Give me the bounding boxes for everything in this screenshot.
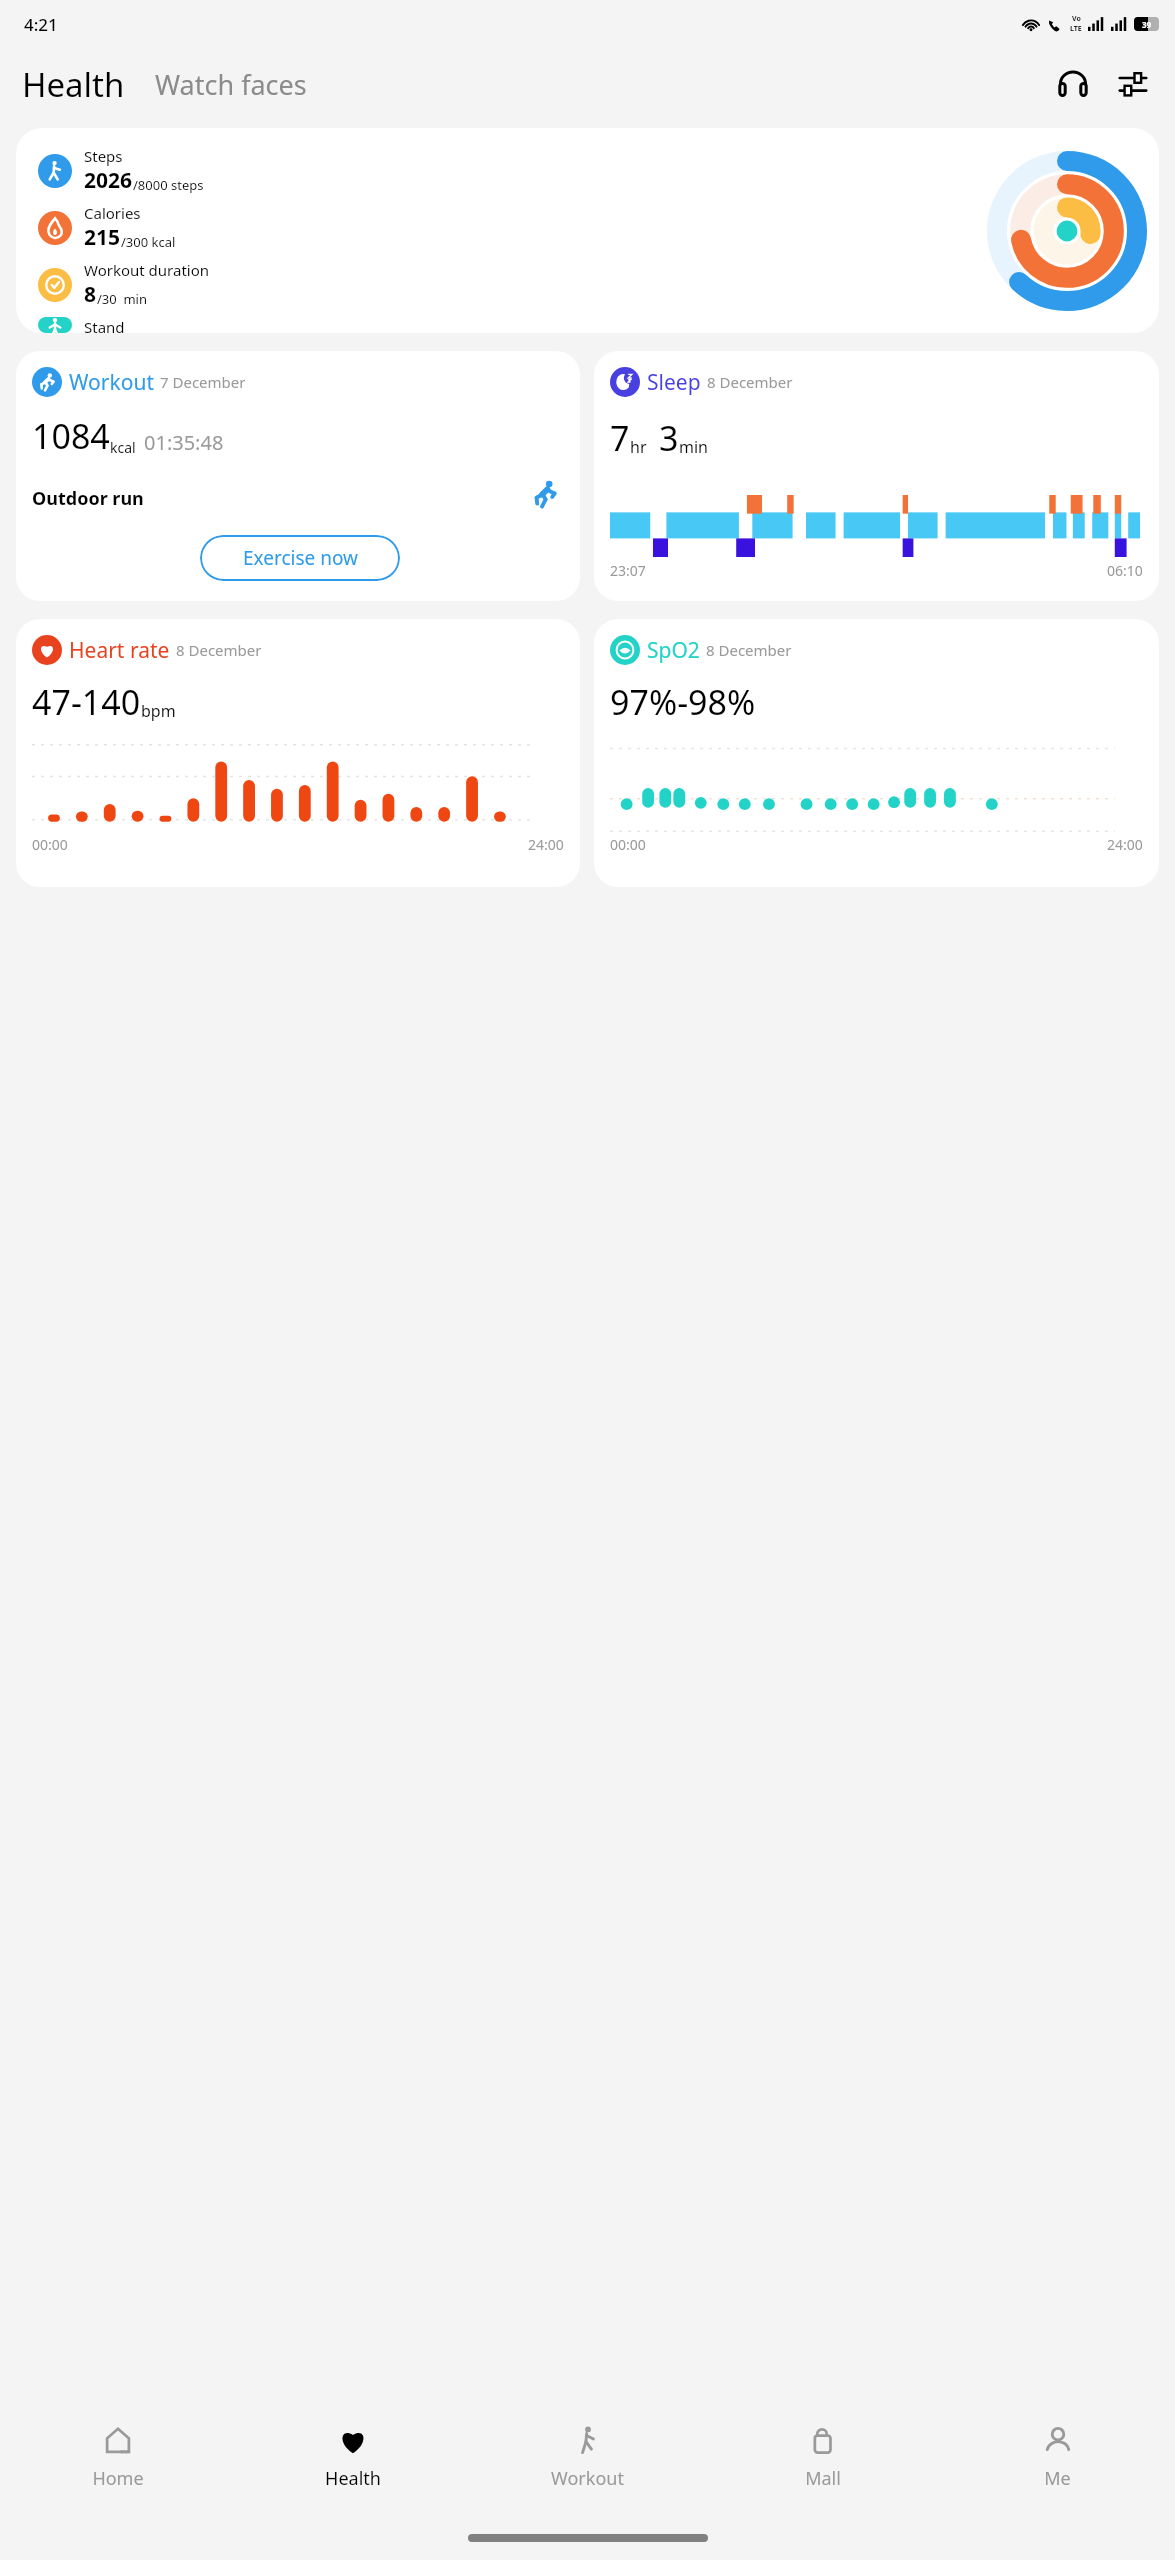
button[interactable]: Mall [705, 2398, 940, 2516]
staticText: 3 [659, 415, 679, 461]
staticText: 7 [610, 415, 630, 461]
staticText: 00:00 [32, 835, 68, 854]
staticText: Heart rate [69, 636, 170, 665]
staticText: 01:35:48 [144, 429, 224, 456]
staticText: Steps [84, 146, 123, 166]
staticText: Exercise now [243, 545, 358, 571]
staticText: hr [630, 436, 647, 458]
staticText: /30 min [97, 290, 148, 308]
button[interactable]: Home [0, 2398, 235, 2516]
staticText: /300 kcal [121, 233, 176, 251]
staticText: Watch faces [155, 66, 307, 103]
button[interactable]: SpO2 [594, 619, 1159, 887]
button[interactable]: Sleep [594, 351, 1159, 601]
staticText: Workout duration [84, 260, 210, 280]
staticText: 23:07 [610, 561, 646, 580]
staticText: Health [325, 2466, 381, 2491]
button[interactable]: Workout [470, 2398, 705, 2516]
staticText: min [679, 436, 708, 458]
staticText: bpm [141, 700, 176, 722]
button[interactable]: Workout [16, 351, 580, 601]
staticText: 4:21 [24, 13, 58, 36]
button[interactable]: Me [940, 2398, 1175, 2516]
staticText: 7 December [160, 372, 246, 392]
staticText: Vo [1072, 14, 1081, 24]
staticText: 00:00 [610, 835, 646, 854]
button[interactable]: Exercise now [200, 535, 400, 581]
staticText: 24:00 [1107, 835, 1143, 854]
staticText: 215 [84, 223, 121, 252]
staticText: LTE [1070, 24, 1082, 34]
staticText: 8 December [707, 372, 793, 392]
button[interactable]: Health [20, 62, 127, 107]
staticText: 8 December [176, 640, 262, 660]
staticText: 97%-98% [610, 679, 756, 725]
staticText: 06:10 [1107, 561, 1143, 580]
staticText: Calories [84, 203, 141, 223]
button[interactable]: Watch faces [153, 66, 309, 103]
button[interactable]: Heart rate [16, 619, 580, 887]
staticText: Me [1044, 2466, 1071, 2491]
staticText: 24:00 [528, 835, 564, 854]
staticText: 47-140 [32, 679, 141, 725]
staticText: Home [92, 2466, 144, 2491]
staticText: Mall [805, 2466, 841, 2491]
button[interactable]: Steps [16, 128, 1159, 333]
button[interactable]: Health [235, 2398, 470, 2516]
staticText: /8000 steps [133, 176, 204, 194]
staticText: kcal [110, 438, 136, 457]
staticText: SpO2 [647, 636, 700, 665]
staticText: 39 [1142, 19, 1152, 30]
staticText: Health [22, 62, 125, 107]
staticText: 2026 [84, 166, 133, 195]
button[interactable]: Headphones [1051, 62, 1095, 106]
button[interactable]: Settings [1111, 62, 1155, 106]
staticText: 8 December [706, 640, 792, 660]
staticText: Outdoor run [32, 486, 144, 511]
staticText: 8 [84, 280, 97, 309]
staticText: Sleep [647, 368, 701, 397]
staticText: Workout [551, 2466, 624, 2491]
staticText: 1084 [32, 413, 110, 459]
staticText: Workout [69, 368, 154, 397]
staticText: Stand [84, 317, 125, 333]
